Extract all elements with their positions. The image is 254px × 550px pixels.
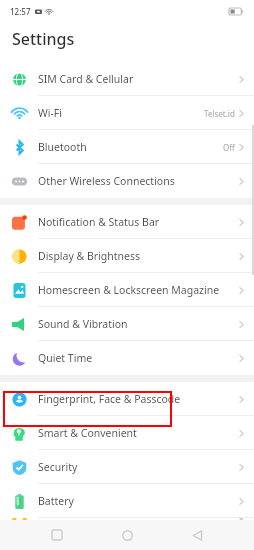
staticText: Bluetooth (38, 140, 87, 154)
staticText: Telset.id (204, 108, 235, 119)
staticText: Homescreen & Lockscreen Magazine (38, 283, 220, 297)
button[interactable]: Language & Region (0, 518, 254, 520)
button[interactable]: SIM Card & Cellular (0, 62, 254, 96)
button[interactable]: Other Wireless Connections (0, 164, 254, 198)
button[interactable]: Battery (0, 484, 254, 518)
staticText: Smart & Convenient (38, 426, 137, 440)
button[interactable]: Recents (44, 522, 70, 548)
button[interactable]: Quiet Time (0, 341, 254, 375)
staticText: Sound & Vibration (38, 317, 128, 331)
button[interactable]: Notification & Status Bar (0, 205, 254, 239)
staticText: Settings (12, 28, 75, 50)
button[interactable]: Wi-Fi (0, 96, 254, 130)
button[interactable]: Fingerprint, Face & Passcode (0, 382, 254, 416)
button[interactable]: Bluetooth (0, 130, 254, 164)
button[interactable]: Home (114, 522, 140, 548)
staticText: SIM Card & Cellular (38, 72, 134, 86)
staticText: Off (223, 142, 235, 153)
staticText: Battery (38, 494, 74, 508)
staticText: Security (38, 460, 78, 474)
button[interactable]: Display & Brightness (0, 239, 254, 273)
button[interactable]: Homescreen & Lockscreen Magazine (0, 273, 254, 307)
staticText: Notification & Status Bar (38, 215, 160, 229)
button[interactable]: Sound & Vibration (0, 307, 254, 341)
button[interactable]: Back (184, 522, 210, 548)
staticText: Quiet Time (38, 351, 93, 365)
staticText: Display & Brightness (38, 249, 141, 263)
staticText: Wi-Fi (38, 106, 63, 120)
button[interactable]: Smart & Convenient (0, 416, 254, 450)
staticText: Other Wireless Connections (38, 174, 175, 188)
staticText: 12:57 (10, 6, 31, 17)
staticText: Fingerprint, Face & Passcode (38, 392, 181, 406)
button[interactable]: Security (0, 450, 254, 484)
